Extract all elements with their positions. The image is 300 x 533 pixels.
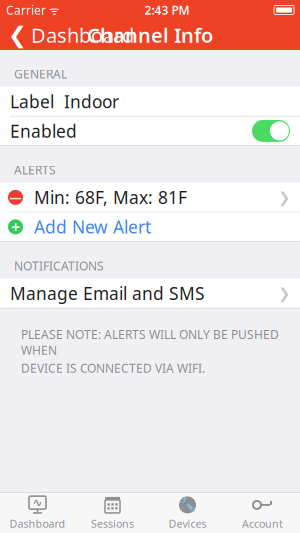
button[interactable]: ❮: [0, 16, 142, 54]
staticText: Channel Info: [87, 22, 213, 48]
staticText: 🔧: [179, 497, 196, 512]
staticText: 2:43 PM: [144, 2, 189, 18]
staticText: Account: [242, 516, 283, 531]
button[interactable]: Sessions: [75, 493, 150, 533]
staticText: Label: [10, 90, 54, 113]
staticText: Min: 68F, Max: 81F: [34, 186, 187, 209]
staticText: Add New Alert: [34, 215, 151, 238]
staticText: Carrier: [6, 2, 46, 18]
staticText: +: [11, 216, 20, 237]
button[interactable]: +: [0, 212, 300, 241]
staticText: ❯: [278, 285, 290, 302]
staticText: NOTIFICATIONS: [14, 258, 104, 274]
staticText: —: [9, 189, 21, 205]
staticText: Dashboard: [31, 22, 134, 48]
staticText: ∿: [32, 496, 42, 509]
staticText: Devices: [168, 516, 206, 531]
staticText: ❯: [278, 189, 290, 206]
button[interactable]: —: [0, 183, 300, 212]
staticText: ALERTS: [14, 162, 56, 178]
staticText: Indoor: [64, 90, 119, 113]
staticText: Manage Email and SMS: [10, 282, 205, 305]
staticText: Enabled: [10, 119, 77, 142]
button[interactable]: Manage Email and SMS: [0, 279, 300, 308]
staticText: DEVICE IS CONNECTED VIA WIFI.: [21, 360, 205, 376]
staticText: PLEASE NOTE: ALERTS WILL ONLY BE PUSHED …: [21, 326, 279, 358]
staticText: GENERAL: [14, 66, 67, 82]
button[interactable]: 🔧: [150, 493, 225, 533]
staticText: ❮: [8, 22, 27, 48]
staticText: ᯤ: [46, 2, 60, 18]
staticText: Dashboard: [9, 516, 65, 531]
staticText: Sessions: [91, 516, 134, 531]
button[interactable]: Enabled: [252, 120, 290, 142]
button[interactable]: Account: [225, 493, 300, 533]
button[interactable]: ∿: [0, 493, 75, 533]
